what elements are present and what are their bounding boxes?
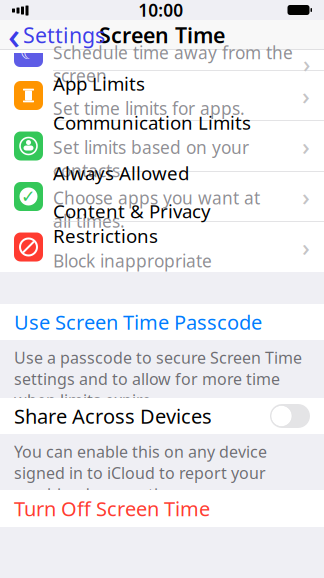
staticText: › [302,80,310,111]
staticText: Block inappropriate content. [53,249,212,295]
staticText: Content & Privacy Restrictions [53,199,211,248]
staticText: Communication Limits [53,110,251,135]
button[interactable]: Content & Privacy Restrictions [0,222,324,272]
button[interactable]: ✓ [0,171,324,221]
button[interactable]: Use Screen Time Passcode [0,304,324,340]
button[interactable]: Communication Limits [0,121,324,171]
staticText: Set time limits for apps. [53,97,245,120]
staticText: Share Across Devices [14,403,212,429]
staticText: App Limits [53,71,145,96]
staticText: ‹ [8,10,20,60]
staticText: › [302,181,310,212]
staticText: Choose apps you want at all times. [53,186,260,232]
staticText: Screen Time [99,21,225,49]
button[interactable]: Turn Off Screen Time [0,490,324,527]
staticText: › [303,49,310,79]
button[interactable]: ☾ [0,50,324,70]
button[interactable]: ‹ [0,20,113,50]
staticText: Use a passcode to secure Screen Time set… [14,347,302,411]
staticText: ✓ [21,187,36,206]
staticText: Use Screen Time Passcode [14,309,262,335]
staticText: 10:00 [138,0,183,21]
staticText: Turn Off Screen Time [14,495,210,522]
staticText: You can enable this on any device signed… [14,441,267,505]
staticText: Always Allowed [53,161,189,185]
button[interactable]: App Limits [0,70,324,120]
button[interactable]: Share Across Devices [0,398,324,434]
staticText: › [302,130,310,162]
staticText: Settings [23,21,105,49]
staticText: Schedule time away from the screen. [53,41,293,87]
staticText: Set limits based on your contacts. [53,136,249,182]
staticText: › [302,231,310,263]
staticText: ☾ [19,41,37,64]
